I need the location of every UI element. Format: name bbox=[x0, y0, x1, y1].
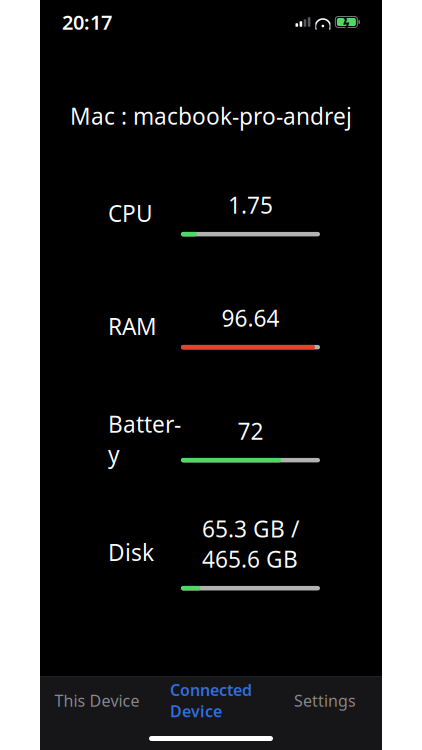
staticText: Battery bbox=[108, 409, 181, 469]
staticText: 65.3 GB / 465.6 GB bbox=[202, 514, 299, 574]
staticText: Mac : macbook-pro-andrej bbox=[70, 101, 352, 131]
staticText: CPU bbox=[108, 198, 153, 228]
staticText: Disk bbox=[108, 537, 154, 567]
staticText: 1.75 bbox=[228, 190, 273, 220]
staticText: 72 bbox=[237, 416, 263, 446]
button[interactable]: Connected Device bbox=[154, 676, 268, 724]
staticText: This Device bbox=[54, 690, 139, 711]
staticText: 96.64 bbox=[221, 303, 279, 333]
staticText: Connected Device bbox=[170, 679, 252, 722]
staticText: ϟ bbox=[343, 14, 350, 30]
staticText: Settings bbox=[294, 690, 356, 711]
staticText: 20:17 bbox=[62, 9, 112, 35]
staticText: RAM bbox=[108, 311, 157, 341]
button[interactable]: Settings bbox=[268, 676, 382, 724]
button[interactable]: This Device bbox=[40, 676, 154, 724]
